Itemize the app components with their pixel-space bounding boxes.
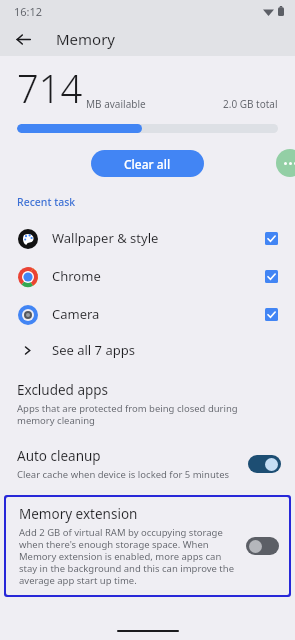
staticText: Clear all [124, 156, 171, 172]
staticText: Auto cleanup [17, 447, 101, 465]
staticText: Excluded apps [17, 381, 109, 399]
staticText: Memory [56, 29, 116, 49]
staticText: Memory extension [19, 505, 138, 523]
button[interactable]: Camera [0, 295, 295, 333]
staticText: Recent task [17, 195, 76, 209]
button[interactable]: Toggle off [246, 537, 279, 555]
staticText: Add 2 GB of virtual RAM by occupying sto… [19, 526, 236, 587]
staticText: 2.0 GB total [223, 97, 278, 111]
staticText: Apps that are protected from being close… [17, 402, 271, 427]
staticText: MB available [86, 97, 146, 111]
staticText: 714 [17, 62, 83, 114]
staticText: See all 7 apps [52, 341, 135, 359]
staticText: Wallpaper & style [52, 229, 159, 247]
button[interactable]: Back [10, 26, 36, 52]
button[interactable]: Wallpaper & style [0, 219, 295, 257]
staticText: Chrome [52, 267, 101, 285]
button[interactable]: Memory extension [6, 497, 289, 595]
button[interactable]: Auto cleanup [0, 447, 295, 481]
button[interactable]: See all 7 apps [0, 333, 295, 367]
button[interactable]: Clear all [91, 150, 204, 177]
button[interactable]: Toggle on [248, 455, 281, 473]
button[interactable]: Chrome [0, 257, 295, 295]
button[interactable]: Excluded apps [0, 377, 295, 431]
button[interactable]: More options [276, 149, 295, 177]
staticText: Clear cache when device is locked for 5 … [17, 468, 230, 481]
staticText: Camera [52, 305, 100, 323]
staticText: 16:12 [14, 4, 43, 19]
